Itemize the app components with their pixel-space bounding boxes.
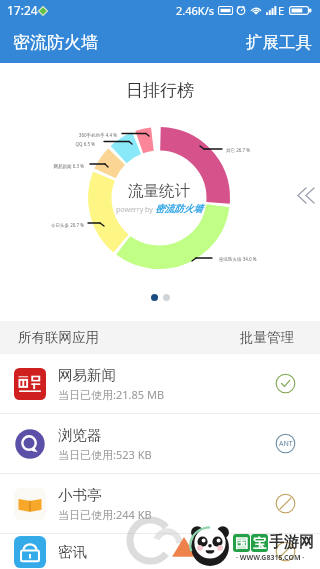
- staticText: powerry by: [116, 205, 155, 215]
- button[interactable]: Toggle network access: [275, 433, 296, 454]
- staticText: QQ 6.5 %: [25, 141, 95, 147]
- staticText: 密讯: [58, 543, 87, 561]
- button[interactable]: Previous page: [292, 182, 320, 209]
- staticText: 当日已使用:21.85 MB: [58, 387, 165, 402]
- staticText: 360手机助手 4.4 %: [47, 132, 117, 138]
- staticText: 网易新闻: [58, 366, 116, 384]
- staticText: 17:24: [7, 2, 38, 18]
- staticText: E: [278, 3, 285, 18]
- staticText: · WWW.G8315.COM ·: [236, 553, 305, 563]
- staticText: 网易新闻 6.3 %: [14, 163, 84, 169]
- button[interactable]: Toggle network access: [275, 541, 296, 562]
- button[interactable]: 浏览器: [0, 414, 320, 474]
- button[interactable]: Toggle network access: [275, 493, 296, 514]
- button[interactable]: 密讯: [0, 534, 320, 569]
- staticText: 密流防火墙 34.0 %: [219, 256, 257, 262]
- staticText: 流量统计: [128, 181, 190, 201]
- button[interactable]: 密流防火墙: [0, 23, 112, 62]
- button[interactable]: 网易新闻: [0, 354, 320, 414]
- staticText: 国: [235, 535, 248, 551]
- staticText: 所有联网应用: [18, 329, 99, 346]
- button[interactable]: 批量管理: [226, 322, 320, 353]
- staticText: 宝: [253, 535, 266, 551]
- staticText: 2.46K/s: [176, 3, 214, 18]
- button[interactable]: 扩展工具: [232, 23, 320, 62]
- staticText: 浏览器: [58, 426, 102, 444]
- staticText: 小书亭: [58, 486, 102, 504]
- button[interactable]: Toggle network access: [275, 373, 296, 394]
- staticText: 当日已使用:244 KB: [58, 507, 152, 522]
- staticText: 密流防火墙: [155, 203, 203, 215]
- staticText: 批量管理: [240, 329, 294, 346]
- staticText: ANT: [279, 439, 293, 449]
- staticText: 日排行榜: [126, 80, 194, 101]
- button[interactable]: 小书亭: [0, 474, 320, 534]
- staticText: 手游网: [269, 533, 314, 552]
- staticText: 密流防火墙: [13, 32, 98, 53]
- staticText: 其它 26.7 %: [226, 147, 251, 153]
- staticText: 今日头条 20.7 %: [14, 222, 84, 228]
- staticText: 扩展工具: [246, 32, 312, 53]
- staticText: 当日已使用:523 KB: [58, 447, 152, 462]
